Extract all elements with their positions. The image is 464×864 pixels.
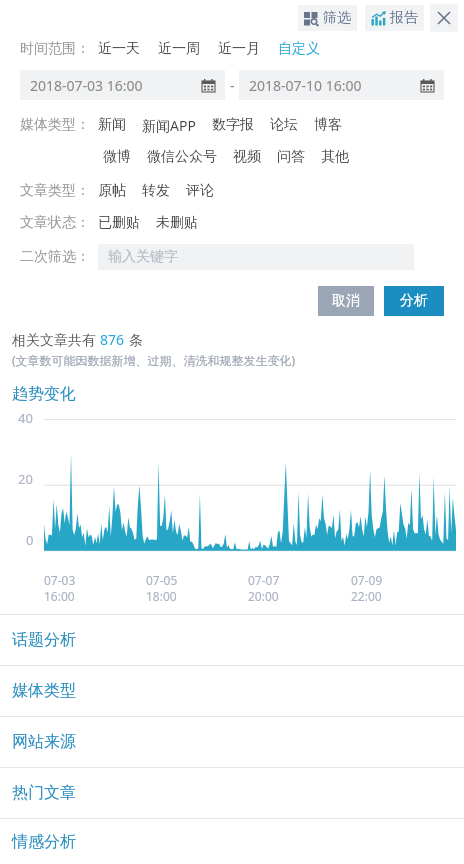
button[interactable]: 近一天 (98, 40, 140, 58)
button[interactable]: 情感分析 (0, 819, 464, 864)
button[interactable]: 已删贴 (98, 214, 140, 232)
button[interactable]: 转发 (142, 182, 170, 200)
staticText: 时间范围： (20, 40, 90, 58)
button[interactable]: 媒体类型 (0, 666, 464, 716)
staticText: 近一周 (158, 40, 200, 58)
staticText: 原帖 (98, 182, 126, 200)
staticText: 网站来源 (12, 732, 76, 752)
staticText: 博客 (314, 116, 342, 134)
button[interactable]: 近一月 (218, 40, 260, 58)
button[interactable]: 论坛 (270, 116, 298, 134)
staticText: 未删贴 (156, 214, 198, 232)
staticText: 相关文章共有 (12, 330, 100, 349)
staticText: 数字报 (212, 116, 254, 134)
staticText: 微博 (103, 148, 131, 166)
staticText: 2018-07-03 16:00 (30, 76, 143, 95)
button[interactable]: 博客 (314, 116, 342, 134)
button[interactable]: 新闻APP (142, 116, 196, 135)
button[interactable]: 自定义 (278, 40, 320, 58)
staticText: 媒体类型： (20, 116, 90, 134)
staticText: 新闻 (98, 116, 126, 134)
staticText: - (230, 76, 235, 95)
button[interactable]: 评论 (186, 182, 214, 200)
button[interactable]: 2018-07-10 16:00 (239, 70, 444, 100)
staticText: 07-09 (351, 572, 383, 588)
staticText: 其他 (321, 148, 349, 166)
staticText: 取消 (332, 292, 360, 310)
staticText: 新闻APP (142, 116, 196, 135)
button[interactable]: 未删贴 (156, 214, 198, 232)
staticText: 话题分析 (12, 630, 76, 650)
staticText: 筛选 (323, 9, 351, 27)
staticText: 二次筛选： (20, 248, 90, 266)
staticText: 20 (18, 470, 33, 488)
staticText: 论坛 (270, 116, 298, 134)
staticText: 2018-07-10 16:00 (249, 76, 362, 95)
button[interactable]: 微博 (103, 148, 131, 166)
staticText: 视频 (233, 148, 261, 166)
staticText: 条 (125, 330, 143, 349)
staticText: 输入关键字 (108, 248, 178, 266)
staticText: 20:00 (248, 588, 279, 604)
staticText: 07-07 (248, 572, 280, 588)
staticText: 18:00 (146, 588, 177, 604)
button[interactable]: Close (430, 4, 458, 32)
button[interactable]: 热门文章 (0, 768, 464, 818)
staticText: 文章类型： (20, 182, 90, 200)
button[interactable]: 取消 (318, 286, 374, 316)
button[interactable]: 报告 (365, 5, 424, 31)
button[interactable]: 分析 (384, 286, 444, 316)
staticText: 文章状态： (20, 214, 90, 232)
staticText: 报告 (390, 9, 418, 27)
staticText: (文章数可能因数据新增、过期、清洗和规整发生变化) (12, 352, 296, 368)
staticText: 问答 (277, 148, 305, 166)
staticText: 0 (26, 531, 34, 549)
button[interactable]: 话题分析 (0, 615, 464, 665)
staticText: 转发 (142, 182, 170, 200)
staticText: 媒体类型 (12, 681, 76, 701)
staticText: 近一月 (218, 40, 260, 58)
staticText: 自定义 (278, 40, 320, 58)
staticText: 07-05 (146, 572, 178, 588)
button[interactable]: 2018-07-03 16:00 (20, 70, 225, 100)
button[interactable]: 原帖 (98, 182, 126, 200)
staticText: 07-03 (44, 572, 76, 588)
button[interactable]: 其他 (321, 148, 349, 166)
staticText: 40 (18, 409, 33, 427)
button[interactable]: 视频 (233, 148, 261, 166)
button[interactable]: 新闻 (98, 116, 126, 134)
staticText: 16:00 (44, 588, 75, 604)
button[interactable]: 近一周 (158, 40, 200, 58)
staticText: 22:00 (351, 588, 382, 604)
staticText: 分析 (400, 292, 428, 310)
staticText: 评论 (186, 182, 214, 200)
button[interactable]: 微信公众号 (147, 148, 217, 166)
staticText: 876 (100, 330, 125, 349)
button[interactable]: 数字报 (212, 116, 254, 134)
button[interactable]: 问答 (277, 148, 305, 166)
staticText: 近一天 (98, 40, 140, 58)
button[interactable]: 筛选 (298, 5, 357, 31)
staticText: 已删贴 (98, 214, 140, 232)
button[interactable]: 网站来源 (0, 717, 464, 767)
button[interactable]: 输入关键字 (98, 244, 414, 270)
staticText: 微信公众号 (147, 148, 217, 166)
staticText: 热门文章 (12, 783, 76, 803)
staticText: 趋势变化 (12, 384, 76, 404)
staticText: 情感分析 (12, 832, 76, 852)
